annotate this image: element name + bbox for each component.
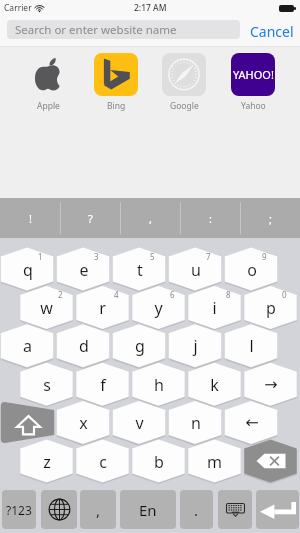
button[interactable]: v xyxy=(113,401,166,444)
button[interactable]: Backspace xyxy=(244,440,297,483)
staticText: q xyxy=(23,259,33,281)
staticText: l xyxy=(249,335,254,357)
button[interactable]: Apple xyxy=(26,53,70,111)
staticText: → xyxy=(264,375,278,394)
staticText: s xyxy=(43,374,51,396)
button[interactable]: u xyxy=(169,248,222,291)
staticText: 7 xyxy=(206,251,211,262)
staticText: 5 xyxy=(150,251,155,262)
staticText: 8 xyxy=(226,289,231,300)
staticText: : xyxy=(209,211,212,226)
button[interactable]: i xyxy=(188,286,241,329)
staticText: y xyxy=(154,297,163,319)
staticText: k xyxy=(210,374,219,396)
staticText: b xyxy=(154,451,164,473)
button[interactable]: q xyxy=(1,248,54,291)
staticText: , xyxy=(96,500,101,520)
button[interactable]: f xyxy=(76,363,129,406)
button[interactable]: l xyxy=(225,324,278,367)
staticText: m xyxy=(207,451,222,473)
button[interactable]: , xyxy=(80,490,116,529)
button[interactable]: Shift xyxy=(0,401,54,444)
staticText: w xyxy=(40,297,53,319)
staticText: YAHOO! xyxy=(233,67,274,82)
staticText: f xyxy=(100,374,106,396)
button[interactable]: Cancel xyxy=(244,16,300,47)
button[interactable]: r xyxy=(76,286,129,329)
button[interactable]: ; xyxy=(240,198,300,238)
staticText: Bing xyxy=(107,100,126,111)
staticText: d xyxy=(79,335,89,357)
button[interactable]: , xyxy=(120,198,180,238)
staticText: ; xyxy=(269,211,272,226)
button[interactable]: En xyxy=(120,490,176,529)
staticText: 2 xyxy=(58,289,63,300)
button[interactable]: ?123 xyxy=(2,490,36,529)
staticText: 6 xyxy=(170,289,175,300)
button[interactable]: → xyxy=(244,363,297,406)
staticText: h xyxy=(154,374,164,396)
staticText: z xyxy=(43,451,51,473)
staticText: e xyxy=(79,259,89,281)
staticText: Google xyxy=(170,100,199,111)
button[interactable]: . xyxy=(180,490,213,529)
button[interactable]: y xyxy=(132,286,185,329)
button[interactable]: c xyxy=(76,440,129,483)
staticText: t xyxy=(137,259,143,281)
staticText: , xyxy=(149,211,152,226)
staticText: a xyxy=(23,335,32,357)
staticText: o xyxy=(247,259,257,281)
button[interactable]: z xyxy=(20,440,73,483)
staticText: g xyxy=(135,335,145,357)
button[interactable]: b xyxy=(132,440,185,483)
button[interactable]: g xyxy=(113,324,166,367)
staticText: En xyxy=(139,500,157,520)
button[interactable]: t xyxy=(113,248,166,291)
staticText: c xyxy=(99,451,107,473)
button[interactable]: o xyxy=(225,248,278,291)
staticText: x xyxy=(79,412,88,434)
button[interactable]: Google xyxy=(162,53,206,111)
button[interactable]: p xyxy=(244,286,297,329)
button[interactable]: : xyxy=(180,198,240,238)
button[interactable]: YAHOO! xyxy=(231,53,275,111)
staticText: ← xyxy=(245,413,259,432)
staticText: v xyxy=(135,412,144,434)
staticText: Yahoo xyxy=(241,100,266,111)
staticText: 4 xyxy=(114,289,119,300)
button[interactable]: Search or enter website name xyxy=(7,20,240,39)
staticText: 2:17 AM xyxy=(134,2,167,14)
button[interactable]: Hide keyboard xyxy=(218,490,252,529)
button[interactable]: e xyxy=(57,248,110,291)
button[interactable]: ? xyxy=(60,198,120,238)
staticText: 9 xyxy=(262,251,267,262)
staticText: Carrier xyxy=(4,2,32,14)
staticText: p xyxy=(266,297,276,319)
staticText: ?123 xyxy=(6,502,32,518)
button[interactable]: a xyxy=(1,324,54,367)
button[interactable]: ! xyxy=(0,198,60,238)
button[interactable]: ← xyxy=(225,401,278,444)
staticText: Cancel xyxy=(250,22,294,41)
staticText: Search or enter website name xyxy=(15,22,177,38)
staticText: ! xyxy=(29,211,32,226)
button[interactable]: x xyxy=(57,401,110,444)
staticText: r xyxy=(99,297,106,319)
button[interactable]: Return xyxy=(256,490,299,529)
staticText: 1 xyxy=(38,251,43,262)
button[interactable]: k xyxy=(188,363,241,406)
staticText: 0 xyxy=(282,289,287,300)
staticText: i xyxy=(212,297,217,319)
staticText: n xyxy=(191,412,201,434)
button[interactable]: n xyxy=(169,401,222,444)
staticText: 3 xyxy=(94,251,99,262)
staticText: . xyxy=(194,500,199,520)
button[interactable]: d xyxy=(57,324,110,367)
button[interactable]: h xyxy=(132,363,185,406)
button[interactable]: m xyxy=(188,440,241,483)
button[interactable]: s xyxy=(20,363,73,406)
button[interactable]: w xyxy=(20,286,73,329)
button[interactable]: Change keyboard xyxy=(41,490,77,529)
button[interactable]: Bing xyxy=(94,53,138,111)
button[interactable]: j xyxy=(169,324,222,367)
